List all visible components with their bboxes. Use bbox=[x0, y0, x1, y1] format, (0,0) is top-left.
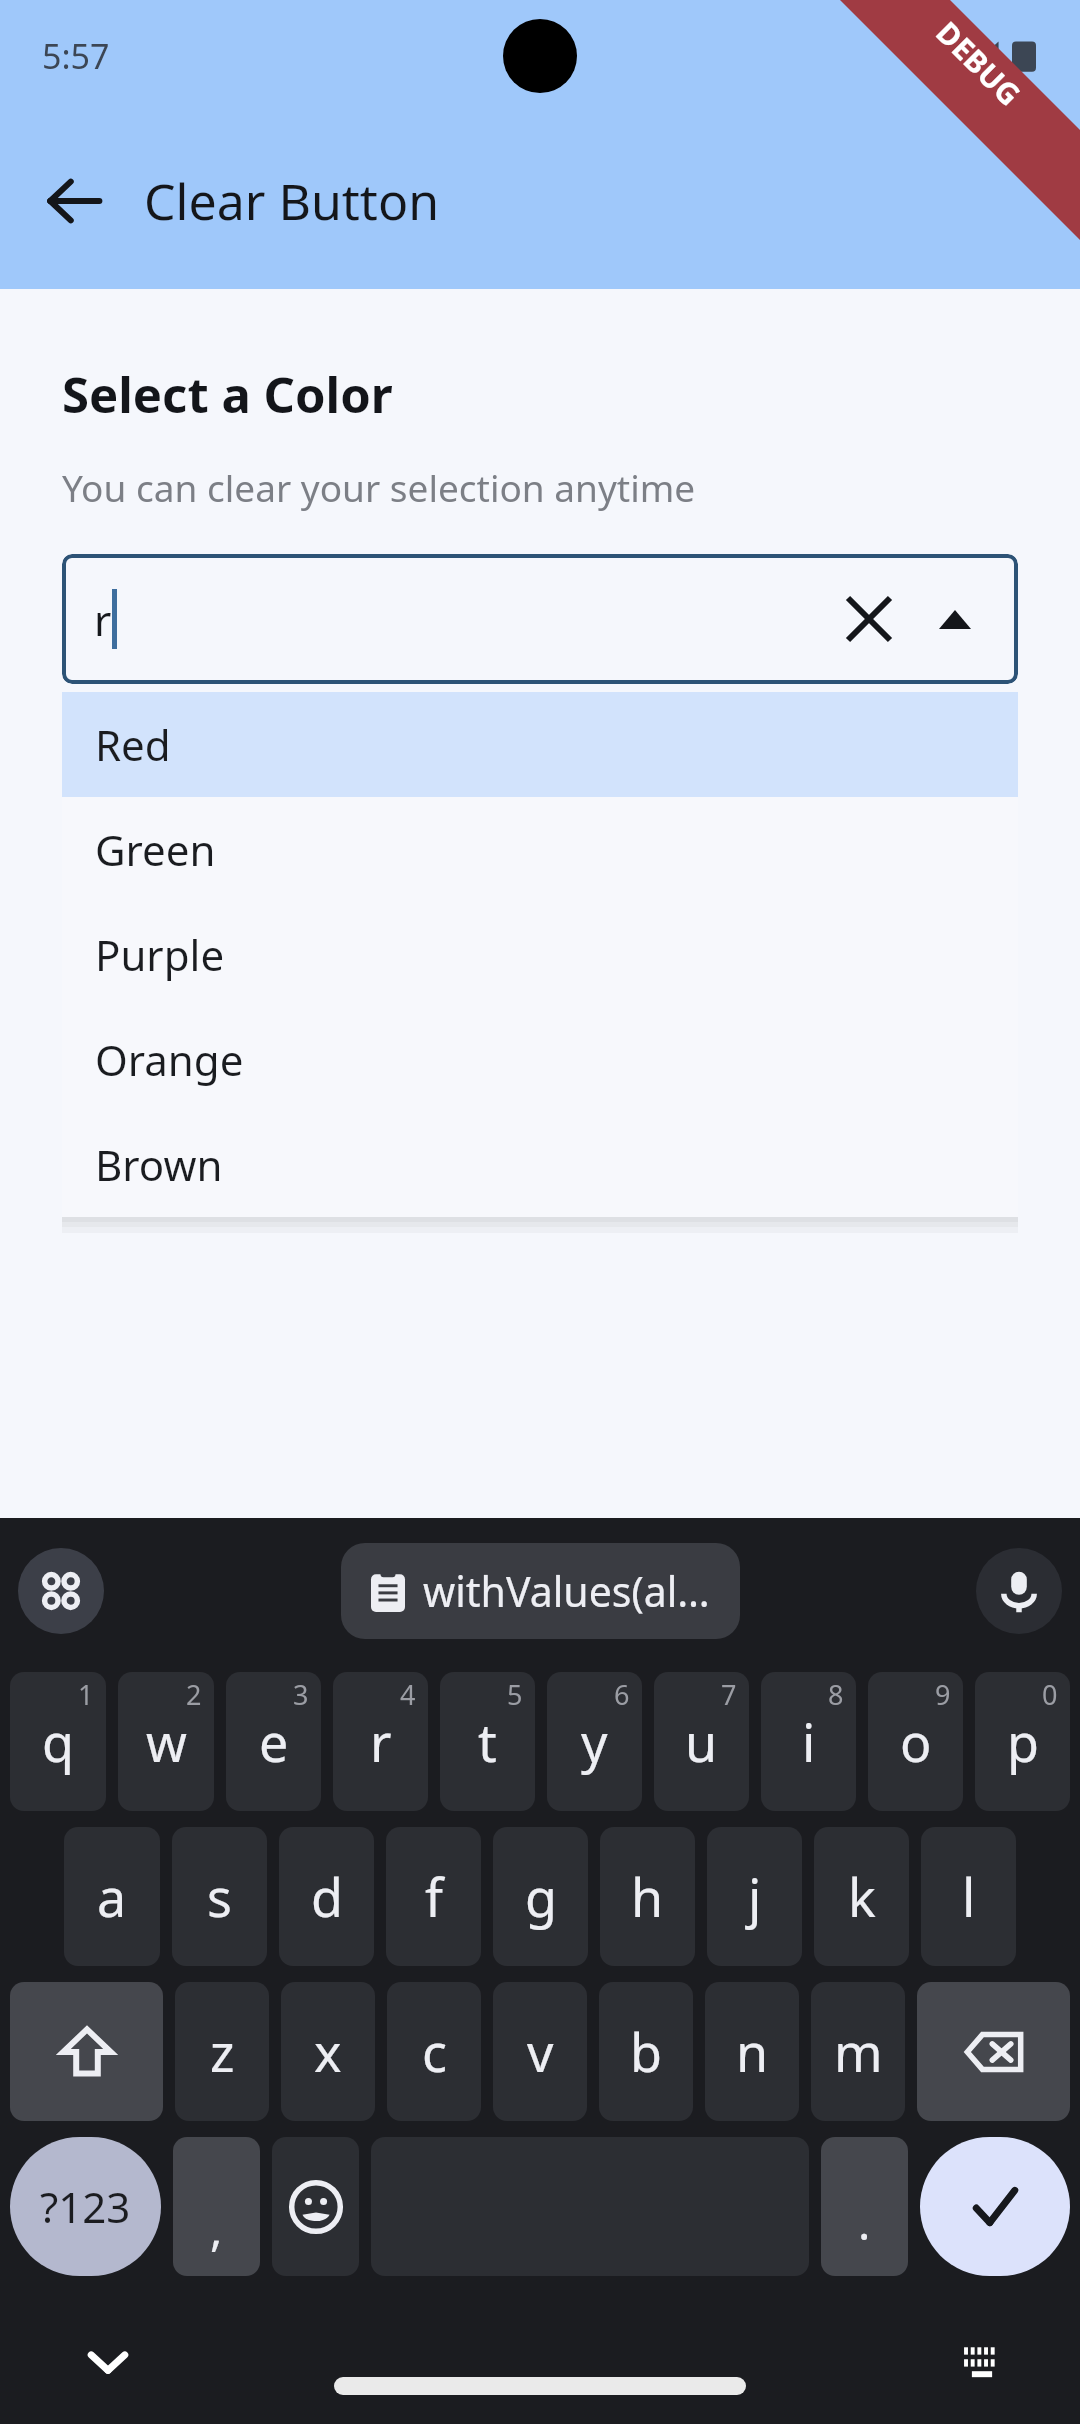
button[interactable]: Switch input method bbox=[946, 2326, 1018, 2398]
button[interactable]: Clear text bbox=[828, 578, 910, 660]
staticText: 5:57 bbox=[42, 33, 110, 79]
button[interactable]: e bbox=[226, 1672, 321, 1811]
staticText: 8 bbox=[828, 1676, 844, 1713]
staticText: Orange bbox=[95, 1031, 244, 1088]
button[interactable]: z bbox=[175, 1982, 269, 2121]
button[interactable]: Collapse dropdown bbox=[918, 582, 992, 656]
staticText: . bbox=[858, 2191, 871, 2254]
button[interactable]: o bbox=[868, 1672, 963, 1811]
staticText: y bbox=[581, 1706, 608, 1777]
staticText: 5 bbox=[507, 1676, 523, 1713]
staticText: DEBUG bbox=[928, 12, 1030, 115]
button[interactable]: , bbox=[173, 2137, 260, 2276]
staticText: o bbox=[900, 1706, 932, 1777]
button[interactable]: Green bbox=[62, 797, 1018, 902]
button[interactable]: p bbox=[975, 1672, 1070, 1811]
button[interactable]: Orange bbox=[62, 1007, 1018, 1112]
button[interactable]: Enter bbox=[920, 2137, 1070, 2276]
button[interactable]: Brown bbox=[62, 1112, 1018, 1217]
staticText: k bbox=[848, 1861, 876, 1932]
button[interactable]: w bbox=[118, 1672, 214, 1811]
button[interactable]: v bbox=[493, 1982, 587, 2121]
button[interactable]: Backspace bbox=[917, 1982, 1070, 2121]
staticText: 6 bbox=[614, 1676, 630, 1713]
staticText: g bbox=[525, 1861, 557, 1932]
staticText: 0 bbox=[1042, 1676, 1058, 1713]
button[interactable]: r bbox=[333, 1672, 428, 1811]
button[interactable]: d bbox=[279, 1827, 374, 1966]
staticText: , bbox=[210, 2197, 223, 2260]
staticText: withValues(al… bbox=[423, 1563, 710, 1619]
staticText: m bbox=[834, 2016, 883, 2087]
button[interactable]: i bbox=[761, 1672, 856, 1811]
button[interactable]: Purple bbox=[62, 902, 1018, 1007]
staticText: 7 bbox=[721, 1676, 737, 1713]
button[interactable]: f bbox=[386, 1827, 481, 1966]
button[interactable]: n bbox=[705, 1982, 799, 2121]
staticText: ?123 bbox=[40, 2178, 131, 2235]
staticText: x bbox=[314, 2016, 342, 2087]
button[interactable]: Red bbox=[62, 692, 1018, 797]
staticText: e bbox=[259, 1706, 289, 1777]
staticText: w bbox=[146, 1706, 187, 1777]
button[interactable]: Back bbox=[26, 153, 122, 249]
button[interactable]: l bbox=[921, 1827, 1016, 1966]
staticText: Green bbox=[95, 821, 216, 878]
staticText: t bbox=[478, 1706, 497, 1777]
staticText: u bbox=[685, 1706, 718, 1777]
staticText: h bbox=[631, 1861, 664, 1932]
button[interactable]: r bbox=[62, 554, 1018, 684]
button[interactable]: g bbox=[493, 1827, 588, 1966]
staticText: z bbox=[210, 2016, 235, 2087]
staticText: c bbox=[422, 2016, 447, 2087]
staticText: l bbox=[962, 1861, 976, 1932]
button[interactable]: a bbox=[64, 1827, 160, 1966]
button[interactable]: withValues(al… bbox=[341, 1543, 740, 1639]
staticText: 3 bbox=[293, 1676, 309, 1713]
staticText: i bbox=[802, 1706, 816, 1777]
button[interactable]: x bbox=[281, 1982, 375, 2121]
button[interactable]: Emoji bbox=[272, 2137, 359, 2276]
button[interactable]: m bbox=[811, 1982, 905, 2121]
staticText: d bbox=[311, 1861, 343, 1932]
staticText: a bbox=[97, 1861, 127, 1932]
staticText: Clear Button bbox=[144, 167, 440, 235]
staticText: s bbox=[207, 1861, 232, 1932]
staticText: 9 bbox=[935, 1676, 951, 1713]
staticText: v bbox=[527, 2016, 554, 2087]
staticText: r bbox=[94, 591, 112, 648]
button[interactable]: ?123 bbox=[10, 2137, 161, 2276]
staticText: 1 bbox=[78, 1676, 94, 1713]
staticText: b bbox=[630, 2016, 662, 2087]
button[interactable]: t bbox=[440, 1672, 535, 1811]
staticText: Purple bbox=[95, 926, 225, 983]
button[interactable]: Shift bbox=[10, 1982, 163, 2121]
staticText: r bbox=[370, 1706, 392, 1777]
button[interactable]: h bbox=[600, 1827, 695, 1966]
button[interactable]: c bbox=[387, 1982, 481, 2121]
button[interactable]: Voice input bbox=[976, 1548, 1062, 1634]
staticText: Brown bbox=[95, 1136, 223, 1193]
button[interactable]: j bbox=[707, 1827, 802, 1966]
staticText: p bbox=[1007, 1706, 1039, 1777]
button[interactable]: k bbox=[814, 1827, 909, 1966]
button[interactable]: y bbox=[547, 1672, 642, 1811]
staticText: n bbox=[736, 2016, 769, 2087]
button[interactable]: b bbox=[599, 1982, 693, 2121]
staticText: Red bbox=[95, 716, 171, 773]
staticText: 4 bbox=[400, 1676, 416, 1713]
button[interactable]: u bbox=[654, 1672, 749, 1811]
staticText: 2 bbox=[186, 1676, 202, 1713]
staticText: f bbox=[425, 1861, 443, 1932]
staticText: You can clear your selection anytime bbox=[62, 462, 696, 512]
staticText: Select a Color bbox=[62, 361, 393, 428]
staticText: j bbox=[748, 1861, 762, 1932]
button[interactable]: s bbox=[172, 1827, 267, 1966]
button[interactable]: Hide keyboard bbox=[72, 2326, 144, 2398]
button[interactable]: q bbox=[10, 1672, 106, 1811]
staticText: q bbox=[42, 1706, 74, 1777]
button[interactable]: . bbox=[821, 2137, 908, 2276]
button[interactable]: Show toolbar bbox=[18, 1548, 104, 1634]
